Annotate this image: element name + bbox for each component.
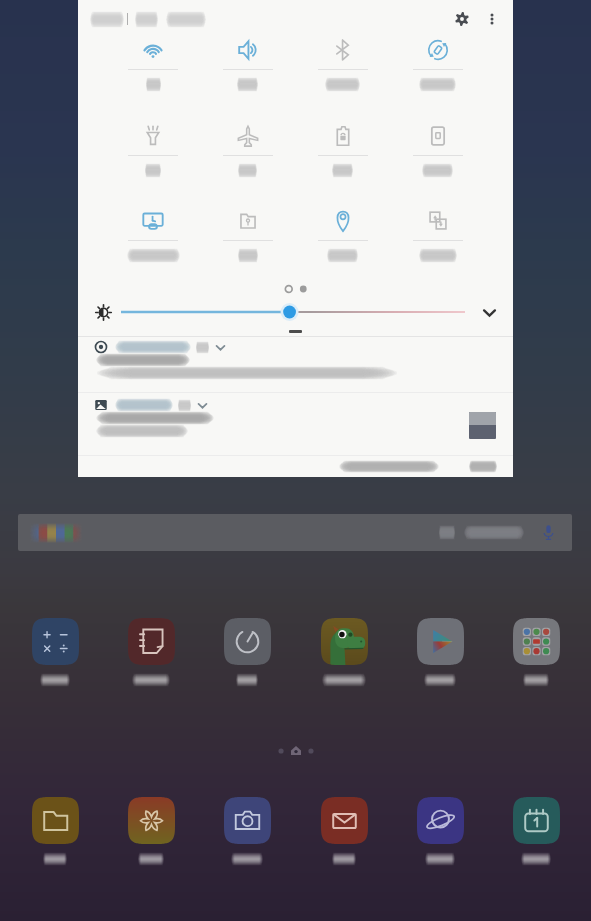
button[interactable]: Camera: [199, 797, 295, 865]
button[interactable]: My Files: [7, 797, 103, 865]
button[interactable]: Flashlight: [106, 123, 200, 195]
button[interactable]: Clock: [199, 618, 295, 686]
button[interactable]: Private mode: [200, 208, 295, 280]
button[interactable]: Play Store: [392, 618, 488, 686]
button[interactable]: Google folder: [488, 618, 584, 686]
button[interactable]: Dino game: [296, 618, 392, 686]
button[interactable]: Brightness: [121, 302, 465, 322]
button[interactable]: Galaxy Store: [103, 797, 199, 865]
button[interactable]: Notification settings: [335, 456, 443, 477]
button[interactable]: [78, 337, 513, 392]
button[interactable]: Email: [296, 797, 392, 865]
button[interactable]: Location: [295, 208, 390, 280]
button[interactable]: Settings: [449, 6, 475, 32]
button[interactable]: Internet: [392, 797, 488, 865]
button[interactable]: Notes: [103, 618, 199, 686]
button[interactable]: Smart View: [390, 208, 485, 280]
button[interactable]: Calendar: [488, 797, 584, 865]
button[interactable]: Sound: [200, 37, 295, 109]
button[interactable]: Clear all: [465, 456, 501, 477]
button[interactable]: Expand brightness options: [477, 300, 501, 324]
button[interactable]: More options: [479, 6, 505, 32]
button[interactable]: Bluetooth: [295, 37, 390, 109]
button[interactable]: Screen timeout: [106, 208, 200, 280]
button[interactable]: Blue light filter: [390, 123, 485, 195]
button[interactable]: [78, 393, 513, 455]
button[interactable]: Google search: [18, 514, 572, 551]
button[interactable]: Flight mode: [200, 123, 295, 195]
button[interactable]: Auto rotate: [390, 37, 485, 109]
button[interactable]: Calculator: [7, 618, 103, 686]
button[interactable]: Secure Folder: [295, 123, 390, 195]
button[interactable]: Wi-Fi: [106, 37, 200, 109]
